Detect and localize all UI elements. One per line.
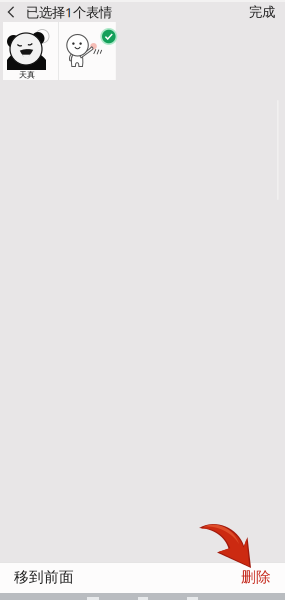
button[interactable]: 完成: [240, 1, 284, 23]
button[interactable]: 天真: [3, 22, 58, 80]
staticText: 已选择1个表情: [26, 3, 112, 21]
button[interactable]: [59, 22, 116, 80]
staticText: 删除: [241, 568, 271, 586]
button[interactable]: 移到前面: [0, 562, 88, 592]
staticText: 完成: [249, 4, 275, 20]
button[interactable]: Back: [1, 1, 21, 23]
staticText: 移到前面: [14, 568, 74, 586]
staticText: 天真: [19, 70, 35, 80]
button[interactable]: 删除: [227, 562, 285, 592]
